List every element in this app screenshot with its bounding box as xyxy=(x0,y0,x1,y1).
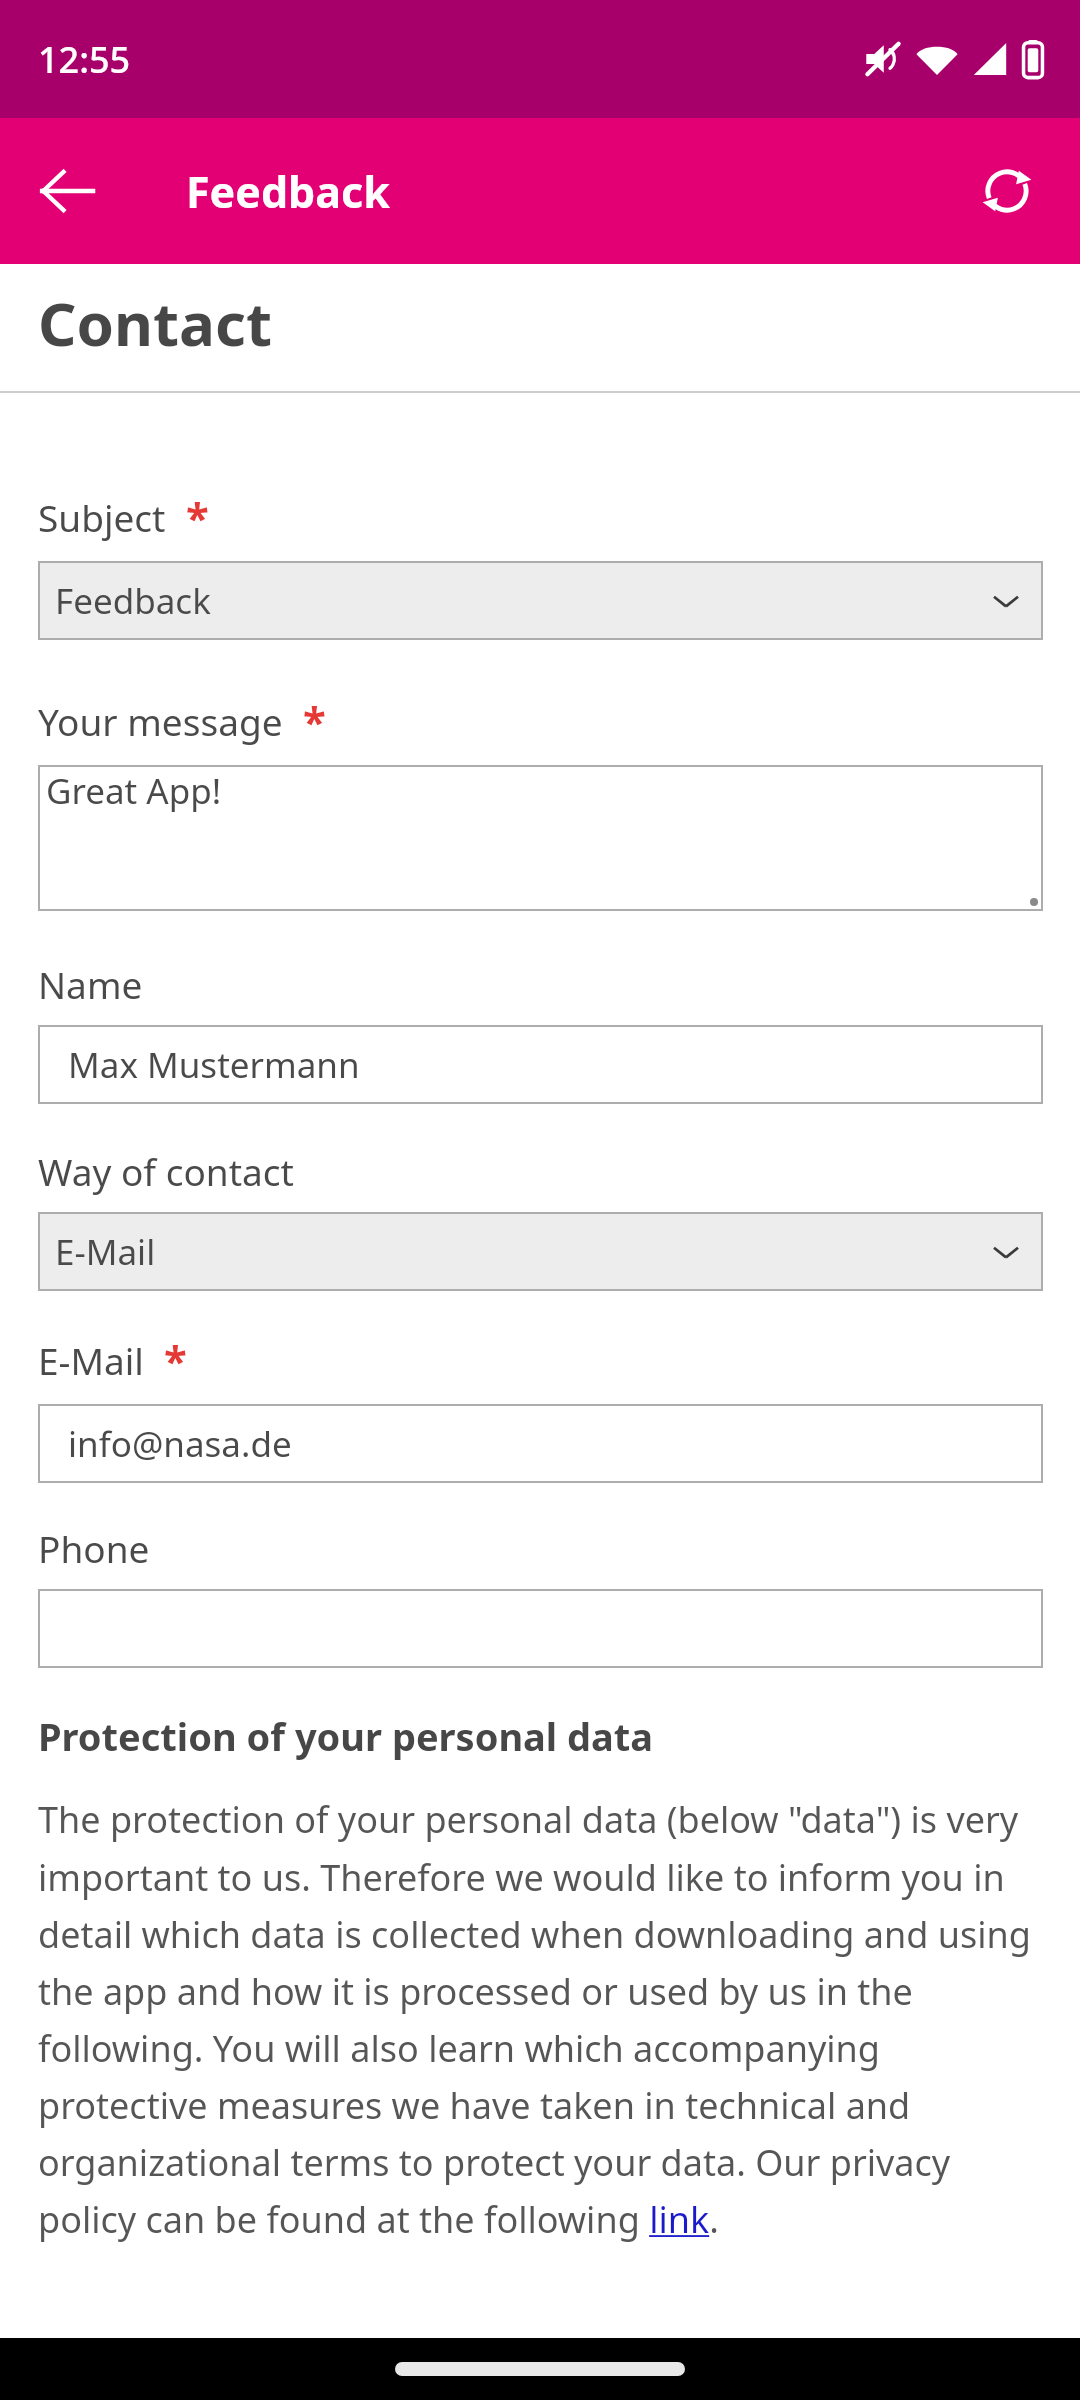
staticText: Subject xyxy=(38,492,166,542)
button[interactable] xyxy=(38,1589,1043,1668)
button[interactable]: The protection of your personal data (be… xyxy=(38,1795,1043,2243)
staticText: info@nasa.de xyxy=(68,1420,292,1468)
staticText: E-Mail xyxy=(38,1335,144,1385)
staticText: Way of contact xyxy=(38,1146,294,1196)
staticText: 12:55 xyxy=(38,35,131,84)
staticText: Feedback xyxy=(55,577,211,625)
button[interactable]: info@nasa.de xyxy=(38,1404,1043,1483)
staticText: E-Mail xyxy=(55,1228,156,1276)
button[interactable]: Home xyxy=(395,2362,685,2376)
staticText: * xyxy=(303,692,326,749)
staticText: Phone xyxy=(38,1523,150,1573)
staticText: Max Mustermann xyxy=(68,1041,360,1089)
button[interactable]: Back xyxy=(12,136,122,246)
staticText: * xyxy=(164,1331,187,1388)
button[interactable]: Feedback xyxy=(38,561,1043,640)
staticText: * xyxy=(186,488,209,545)
staticText: Great App! xyxy=(46,767,222,815)
button[interactable]: Refresh xyxy=(952,136,1062,246)
staticText: Feedback xyxy=(186,162,390,221)
button[interactable]: Max Mustermann xyxy=(38,1025,1043,1104)
staticText: Contact xyxy=(38,282,272,364)
staticText: Your message xyxy=(38,696,283,746)
staticText: Name xyxy=(38,959,143,1009)
staticText: Protection of your personal data xyxy=(38,1710,654,1762)
button[interactable]: E-Mail xyxy=(38,1212,1043,1291)
button[interactable]: Great App! xyxy=(38,765,1043,911)
